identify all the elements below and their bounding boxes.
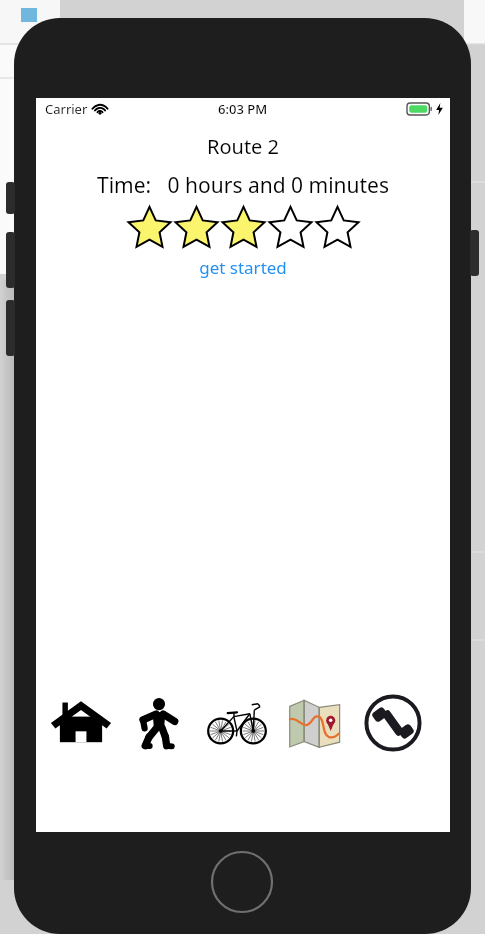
button[interactable]: Rating star 2 bbox=[173, 204, 220, 252]
button[interactable]: Rating star 5 bbox=[314, 204, 361, 252]
staticText: get started bbox=[36, 256, 450, 279]
button[interactable]: Rating star 4 bbox=[267, 204, 314, 252]
button[interactable]: Bike bbox=[198, 684, 276, 762]
staticText: Route 2 bbox=[36, 133, 450, 160]
button[interactable]: Call bbox=[354, 684, 432, 762]
staticText: Carrier bbox=[45, 100, 88, 118]
staticText: Time: 0 hours and 0 minutes bbox=[36, 171, 450, 200]
button[interactable]: Rating star 3 bbox=[220, 204, 267, 252]
button[interactable]: Home button bbox=[210, 850, 274, 914]
button[interactable]: get started bbox=[36, 256, 450, 279]
button[interactable]: Home bbox=[42, 684, 120, 762]
button[interactable]: Map bbox=[276, 684, 354, 762]
button[interactable]: Rating star 1 bbox=[126, 204, 173, 252]
staticText: 6:03 PM bbox=[218, 100, 268, 118]
button[interactable]: Walk bbox=[120, 684, 198, 762]
